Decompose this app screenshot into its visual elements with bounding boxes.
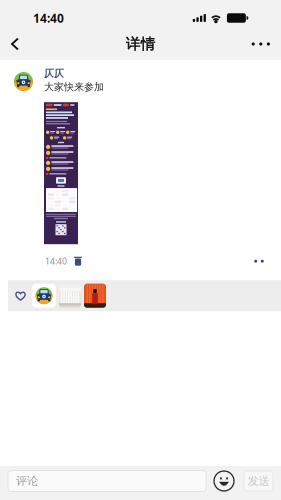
button[interactable]: More options [240, 31, 281, 57]
button[interactable]: Delete [67, 253, 87, 269]
button[interactable]: 发送 [244, 471, 273, 491]
staticText: 发送 [247, 474, 269, 488]
staticText: 评论 [16, 474, 38, 488]
staticText: 14:40 [45, 255, 67, 267]
staticText: 大家快来参加 [44, 81, 104, 93]
button[interactable]: Photo 1 [56, 284, 81, 308]
staticText: 详情 [125, 35, 155, 53]
button[interactable]: Emoji [206, 471, 244, 491]
button[interactable]: Back [0, 29, 31, 58]
staticText: 仄仄 [44, 67, 64, 80]
button[interactable]: 评论 [8, 470, 206, 491]
button[interactable]: Participant avatar [32, 284, 56, 308]
button[interactable]: Like [8, 281, 32, 311]
button[interactable]: Photo 2 [81, 284, 106, 308]
staticText: 14:40 [33, 10, 64, 26]
button[interactable]: Message options [249, 255, 269, 268]
